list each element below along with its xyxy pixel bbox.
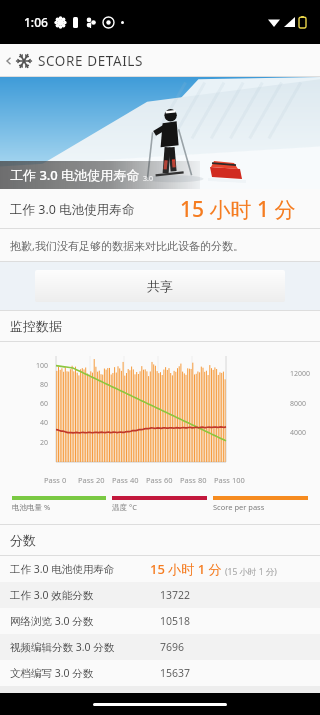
staticText: 12000 — [290, 369, 311, 379]
staticText: 共享 — [147, 278, 173, 294]
staticText: Pass 100 — [214, 475, 245, 485]
staticText: 100 — [22, 361, 48, 371]
staticText: Pass 60 — [146, 475, 173, 485]
button[interactable]: Back — [0, 44, 320, 77]
button[interactable]: 视频编辑分数 3.0 分数 — [0, 634, 320, 660]
button[interactable]: 共享 — [35, 270, 285, 302]
staticText: Pass 80 — [180, 475, 207, 485]
button[interactable]: Home — [93, 703, 227, 706]
staticText: Pass 0 — [44, 475, 67, 485]
staticText: SCORE DETAILS — [38, 52, 144, 70]
staticText: 分数 — [10, 532, 36, 548]
staticText: 抱歉,我们没有足够的数据来对比此设备的分数。 — [10, 238, 244, 253]
staticText: 10518 — [160, 614, 191, 628]
button[interactable]: 文档编写 3.0 分数 — [0, 660, 320, 686]
staticText: 40 — [22, 418, 48, 428]
staticText: 60 — [22, 399, 48, 409]
staticText: 工作 3.0 电池使用寿命 — [10, 201, 135, 218]
staticText: 1:06 — [24, 14, 48, 30]
other: Back — [4, 56, 14, 66]
staticText: 80 — [22, 380, 48, 390]
staticText: 电池电量 % — [12, 502, 51, 512]
staticText: 15637 — [160, 666, 191, 680]
staticText: 监控数据 — [10, 318, 62, 334]
staticText: 网络浏览 3.0 分数 — [10, 614, 94, 628]
button[interactable]: 工作 3.0 效能分数 — [0, 582, 320, 608]
button[interactable]: 网络浏览 3.0 分数 — [0, 608, 320, 634]
staticText: 温度 °C — [112, 502, 137, 512]
staticText: Score per pass — [213, 502, 265, 512]
staticText: 工作 3.0 电池使用寿命 — [10, 166, 140, 184]
staticText: 工作 3.0 效能分数 — [10, 588, 94, 602]
staticText: Pass 40 — [112, 475, 139, 485]
staticText: 15 小时 1 分 — [180, 195, 296, 224]
staticText: 视频编辑分数 3.0 分数 — [10, 640, 115, 654]
staticText: 13722 — [160, 588, 191, 602]
staticText: Pass 20 — [78, 475, 105, 485]
staticText: 4000 — [290, 428, 307, 438]
staticText: 工作 3.0 电池使用寿命 — [10, 562, 115, 576]
staticText: 7696 — [160, 640, 185, 654]
staticText: (15 小时 1 分) — [225, 566, 277, 578]
staticText: 文档编写 3.0 分数 — [10, 666, 94, 680]
staticText: 20 — [22, 438, 48, 448]
staticText: 3.0 — [143, 174, 153, 184]
staticText: 15 小时 1 分 — [150, 560, 222, 578]
staticText: 8000 — [290, 399, 307, 409]
